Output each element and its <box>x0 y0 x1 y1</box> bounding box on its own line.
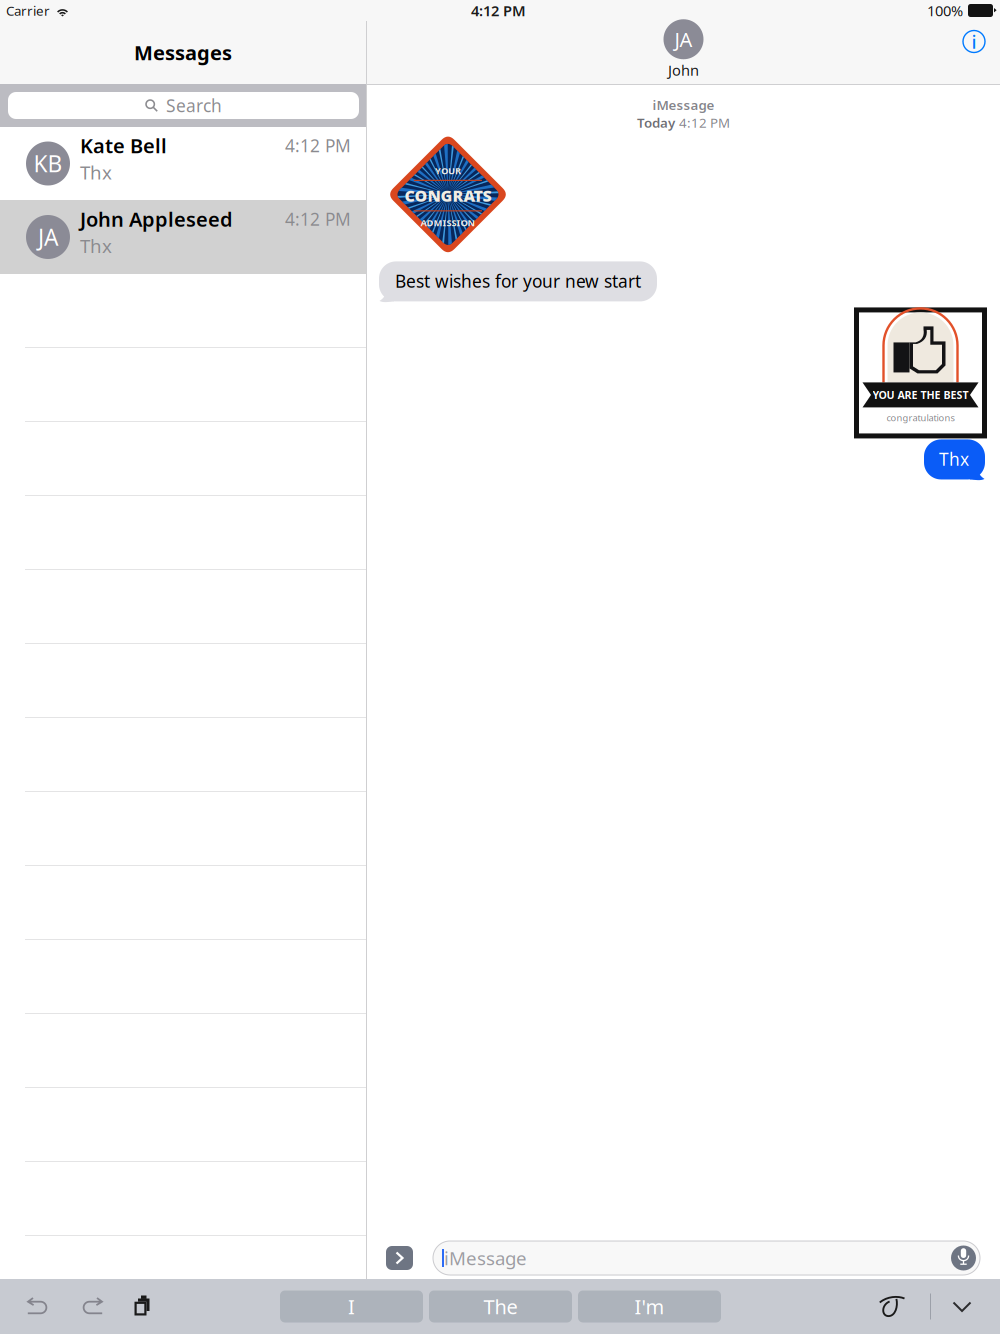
staticText: Messages <box>134 39 232 66</box>
staticText: Carrier <box>6 2 50 19</box>
staticText: John Appleseed <box>80 206 233 232</box>
button[interactable]: Paste <box>133 1295 153 1317</box>
staticText: Best wishes for your new start <box>395 269 641 292</box>
staticText: YOUR <box>435 164 461 177</box>
staticText: iMessage <box>444 1246 527 1270</box>
staticText: I <box>348 1293 355 1320</box>
staticText: CONGRATS <box>404 185 491 206</box>
button[interactable]: I <box>280 1290 423 1322</box>
button[interactable]: Details <box>960 27 988 55</box>
staticText: The <box>483 1293 517 1320</box>
staticText: Today <box>637 114 675 131</box>
staticText: congratulations <box>886 411 954 424</box>
staticText: iMessage <box>652 96 714 114</box>
staticText: YOU ARE THE BEST <box>872 388 968 402</box>
staticText: Kate Bell <box>80 132 167 159</box>
button[interactable]: KB <box>0 127 366 200</box>
staticText: 4:12 PM <box>471 1 526 20</box>
staticText: i <box>971 29 976 54</box>
staticText: John <box>668 60 699 80</box>
staticText: KB <box>33 148 62 178</box>
staticText: Thx <box>80 233 112 258</box>
staticText: ADMISSION <box>420 216 475 229</box>
staticText: JA <box>38 222 58 252</box>
staticText: I'm <box>634 1293 664 1320</box>
button[interactable]: Apps <box>386 1246 413 1270</box>
button[interactable]: Search <box>8 92 359 119</box>
button[interactable]: iMessage <box>433 1241 980 1275</box>
staticText: JA <box>674 26 692 53</box>
button[interactable]: JA <box>0 200 366 274</box>
staticText: Search <box>166 94 222 117</box>
button[interactable]: Undo <box>27 1297 51 1315</box>
button[interactable]: I'm <box>578 1290 721 1322</box>
staticText: Thx <box>80 160 112 185</box>
button[interactable]: Handwriting <box>879 1295 906 1317</box>
button[interactable]: Redo <box>79 1297 103 1315</box>
staticText: 4:12 PM <box>285 134 351 157</box>
staticText: 4:12 PM <box>679 114 730 131</box>
staticText: 100% <box>927 1 963 20</box>
staticText: Thx <box>939 447 969 470</box>
button[interactable]: The <box>429 1290 572 1322</box>
staticText: 4:12 PM <box>285 208 351 231</box>
button[interactable]: Hide Keyboard <box>952 1297 972 1315</box>
